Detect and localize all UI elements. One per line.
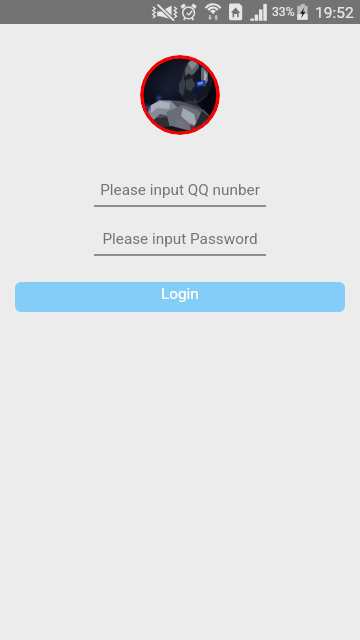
button[interactable]: Please input QQ nunber: [94, 181, 266, 207]
staticText: Please input QQ nunber: [94, 181, 266, 199]
staticText: Please input Password: [94, 230, 266, 248]
button[interactable]: Login: [15, 282, 345, 312]
staticText: 19:52: [315, 4, 354, 22]
button[interactable]: Profile avatar: [140, 55, 220, 135]
staticText: Login: [161, 285, 199, 303]
staticText: 33%: [272, 5, 295, 19]
button[interactable]: Please input Password: [94, 230, 266, 256]
